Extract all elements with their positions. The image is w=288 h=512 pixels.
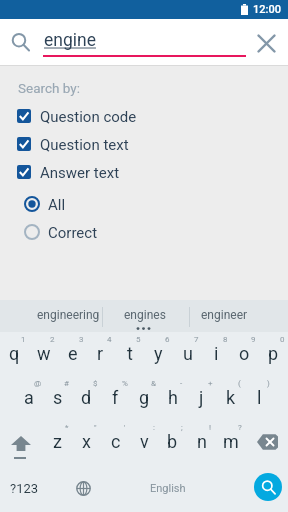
staticText: s bbox=[53, 387, 63, 408]
button[interactable]: ! bbox=[187, 420, 216, 464]
button[interactable]: engineer bbox=[180, 300, 268, 332]
button[interactable]: 6 bbox=[144, 332, 173, 376]
staticText: ? bbox=[238, 423, 242, 432]
staticText: 0 bbox=[280, 335, 285, 344]
button[interactable]: Question text bbox=[0, 131, 288, 157]
staticText: j bbox=[199, 387, 204, 408]
button[interactable]: : bbox=[130, 420, 159, 464]
staticText: g bbox=[139, 387, 150, 408]
staticText: z bbox=[53, 431, 62, 452]
staticText: m bbox=[223, 431, 239, 452]
staticText: engineering bbox=[37, 308, 100, 322]
staticText: 8 bbox=[223, 335, 228, 344]
staticText: 6 bbox=[165, 335, 170, 344]
button[interactable]: 5 bbox=[115, 332, 144, 376]
button[interactable]: Shift bbox=[0, 420, 43, 464]
staticText: 4 bbox=[107, 335, 112, 344]
staticText: f bbox=[112, 387, 119, 408]
button[interactable]: 2 bbox=[29, 332, 58, 376]
staticText: - bbox=[180, 379, 183, 388]
button[interactable]: ? bbox=[216, 420, 245, 464]
staticText: ! bbox=[209, 423, 212, 432]
button[interactable]: 4 bbox=[86, 332, 115, 376]
button[interactable]: ) bbox=[245, 376, 274, 420]
button[interactable]: Question code bbox=[0, 103, 288, 129]
staticText: p bbox=[268, 343, 279, 364]
staticText: $ bbox=[93, 379, 98, 388]
staticText: % bbox=[122, 379, 128, 388]
staticText: Answer text bbox=[40, 164, 120, 182]
button[interactable]: English bbox=[100, 464, 236, 512]
button[interactable]: ; bbox=[158, 420, 187, 464]
staticText: " bbox=[94, 423, 97, 432]
staticText: h bbox=[168, 387, 178, 408]
staticText: ; bbox=[181, 423, 183, 432]
staticText: Search by: bbox=[18, 80, 80, 96]
button[interactable]: Search bbox=[254, 473, 282, 501]
button[interactable]: Search bbox=[6, 28, 34, 56]
button[interactable]: & bbox=[130, 376, 159, 420]
button[interactable]: + bbox=[187, 376, 216, 420]
button[interactable]: ( bbox=[216, 376, 245, 420]
button[interactable]: 7 bbox=[173, 332, 202, 376]
staticText: Correct bbox=[48, 224, 98, 242]
button[interactable]: Correct bbox=[0, 219, 288, 245]
staticText: engines bbox=[124, 308, 166, 322]
staticText: e bbox=[68, 343, 78, 364]
staticText: 1 bbox=[21, 335, 26, 344]
staticText: v bbox=[140, 431, 149, 452]
button[interactable]: 9 bbox=[230, 332, 259, 376]
staticText: ' bbox=[124, 423, 126, 432]
staticText: ) bbox=[267, 379, 270, 388]
staticText: q bbox=[9, 343, 20, 364]
button[interactable]: 3 bbox=[58, 332, 87, 376]
staticText: engineer bbox=[201, 308, 248, 322]
button[interactable]: 0 bbox=[259, 332, 288, 376]
button[interactable]: - bbox=[158, 376, 187, 420]
button[interactable]: ?123 bbox=[0, 464, 48, 512]
staticText: d bbox=[81, 387, 92, 408]
button[interactable]: All bbox=[0, 191, 288, 217]
staticText: English bbox=[150, 482, 186, 495]
button[interactable]: 8 bbox=[202, 332, 231, 376]
staticText: n bbox=[197, 431, 207, 452]
staticText: : bbox=[153, 423, 155, 432]
button[interactable]: $ bbox=[72, 376, 101, 420]
button[interactable]: @ bbox=[14, 376, 43, 420]
staticText: 12:00 bbox=[253, 3, 281, 16]
button[interactable]: Clear search bbox=[252, 29, 280, 57]
staticText: 7 bbox=[194, 335, 199, 344]
staticText: b bbox=[167, 431, 178, 452]
button[interactable]: * bbox=[43, 420, 72, 464]
button[interactable]: % bbox=[101, 376, 130, 420]
staticText: # bbox=[64, 379, 69, 388]
staticText: ?123 bbox=[10, 481, 39, 496]
staticText: a bbox=[24, 387, 34, 408]
staticText: engine bbox=[44, 30, 96, 51]
staticText: t bbox=[127, 343, 133, 364]
button[interactable]: Change keyboard language bbox=[66, 464, 100, 512]
staticText: ( bbox=[238, 379, 241, 388]
staticText: 5 bbox=[136, 335, 141, 344]
staticText: * bbox=[65, 423, 69, 432]
button[interactable]: # bbox=[43, 376, 72, 420]
button[interactable]: Answer text bbox=[0, 159, 288, 185]
staticText: l bbox=[257, 387, 262, 408]
staticText: w bbox=[37, 343, 51, 364]
staticText: r bbox=[97, 343, 104, 364]
button[interactable]: " bbox=[72, 420, 101, 464]
staticText: u bbox=[183, 343, 193, 364]
staticText: 3 bbox=[79, 335, 84, 344]
button[interactable]: Backspace bbox=[245, 420, 288, 464]
staticText: c bbox=[111, 431, 121, 452]
button[interactable]: 1 bbox=[0, 332, 29, 376]
staticText: & bbox=[151, 379, 156, 388]
button[interactable]: engines bbox=[101, 300, 189, 332]
button[interactable]: ' bbox=[101, 420, 130, 464]
staticText: + bbox=[208, 379, 213, 388]
staticText: i bbox=[214, 343, 219, 364]
staticText: Question code bbox=[40, 108, 137, 126]
button[interactable]: engineering bbox=[24, 300, 112, 332]
staticText: x bbox=[82, 431, 91, 452]
staticText: @ bbox=[34, 379, 42, 388]
